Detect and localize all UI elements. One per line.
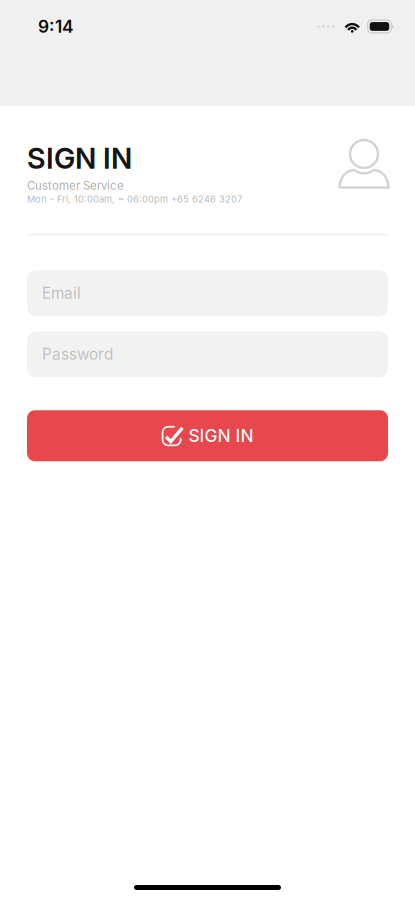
staticText: Customer Service: [27, 179, 124, 193]
button[interactable]: SIGN IN: [27, 410, 388, 461]
staticText: SIGN IN: [188, 425, 253, 446]
staticText: Email: [42, 284, 81, 303]
button[interactable]: Email: [27, 270, 388, 316]
staticText: Password: [42, 345, 113, 364]
staticText: Mon - Fri, 10:00am, ~ 06:00pm +65 6246 3…: [27, 194, 242, 205]
button[interactable]: Password: [27, 331, 388, 377]
staticText: 9:14: [38, 16, 74, 37]
staticText: SIGN IN: [27, 141, 132, 176]
button[interactable]: Account: [338, 141, 390, 197]
